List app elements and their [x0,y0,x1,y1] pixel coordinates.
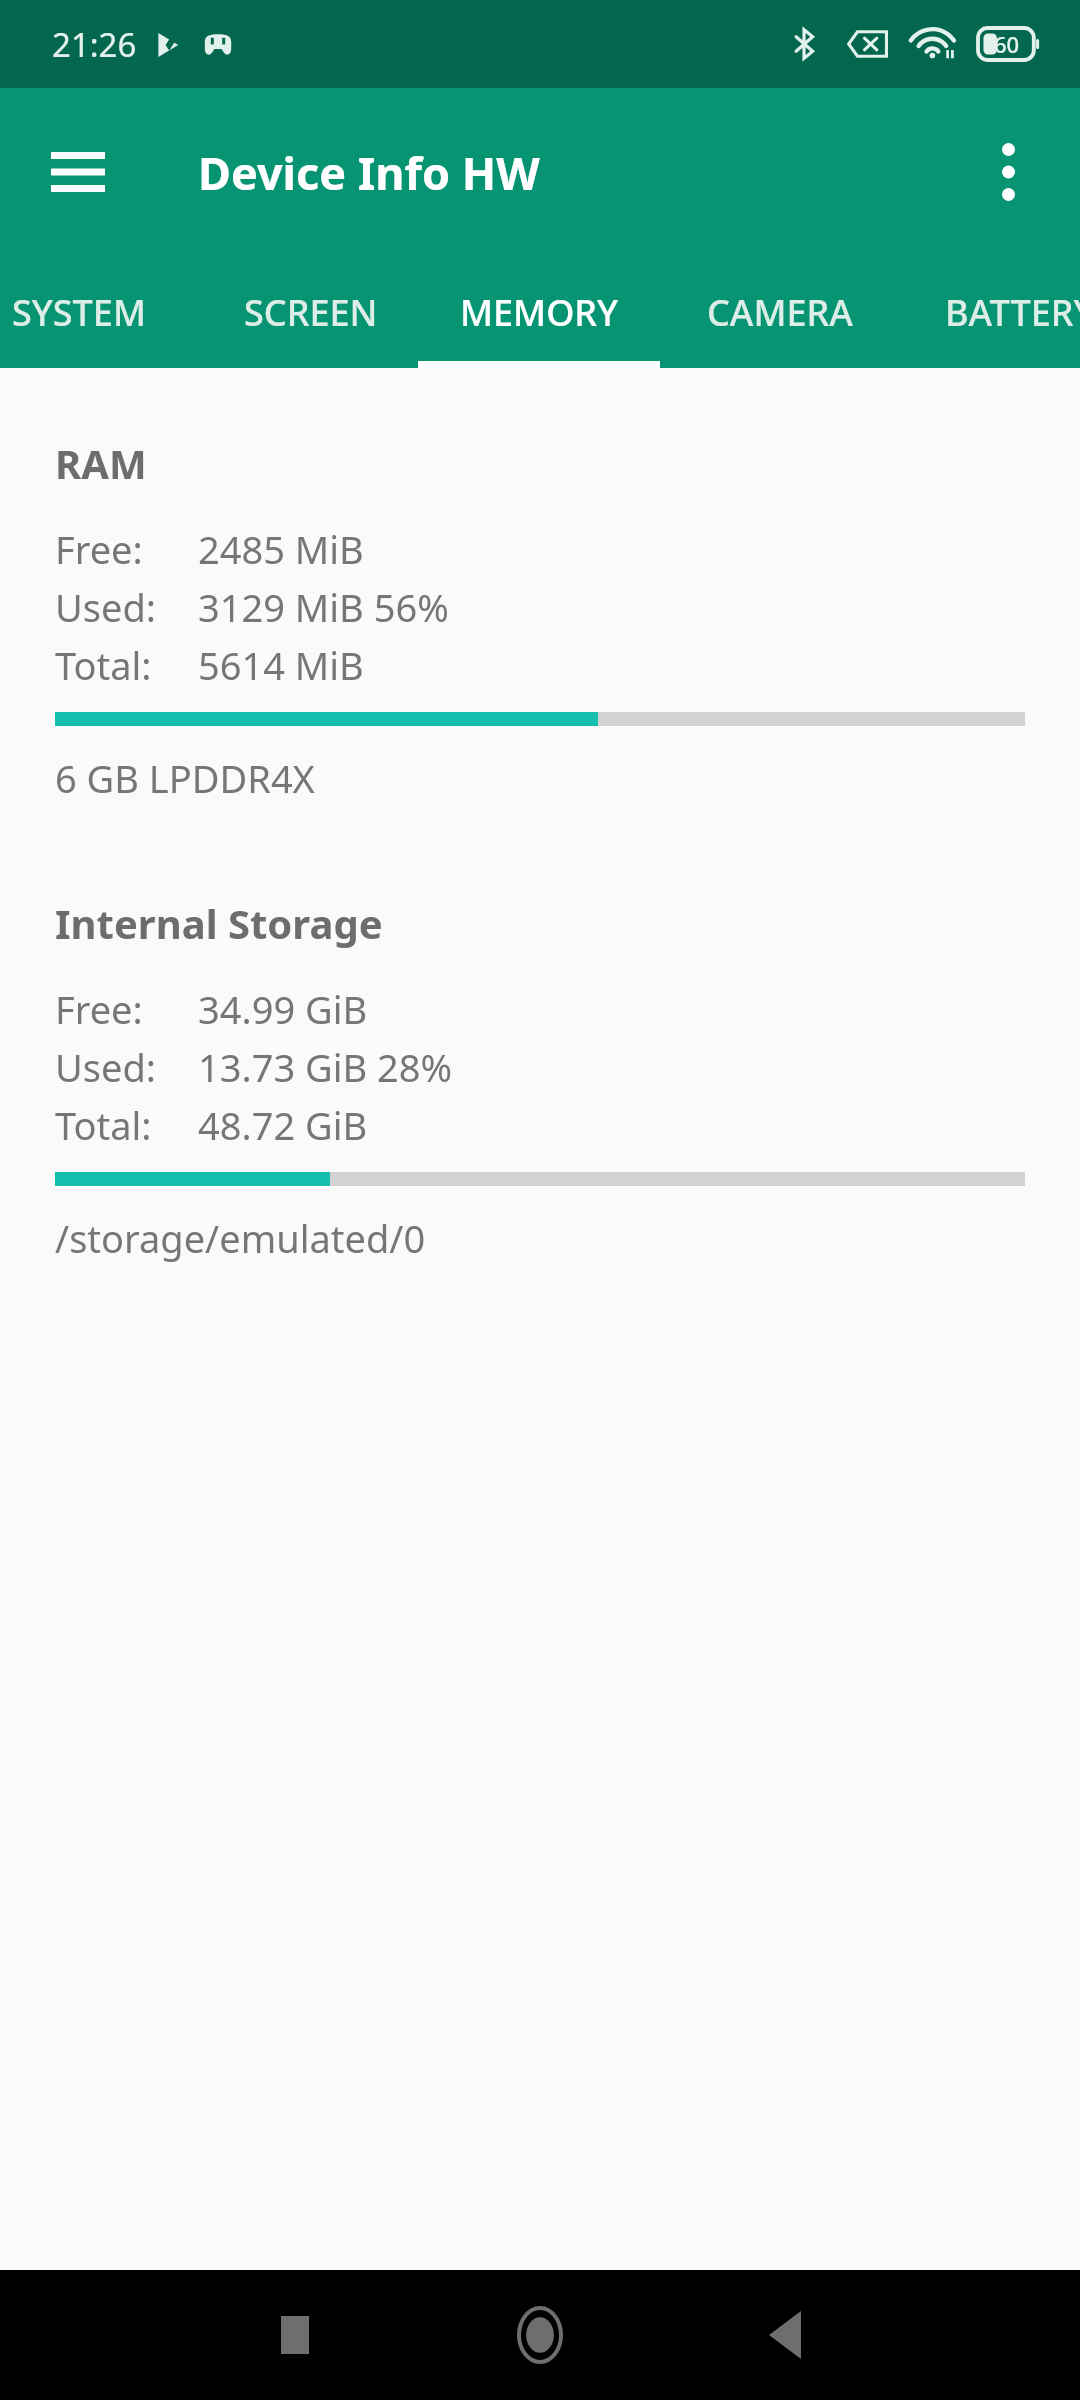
button[interactable]: SYSTEM [0,256,204,368]
staticText: Total: [55,639,152,691]
staticText: 21:26 [52,22,137,67]
staticText: 5614 MiB [198,639,364,691]
staticText: MEMORY [460,288,619,337]
staticText: Internal Storage [55,896,383,950]
staticText: 2485 MiB [198,523,364,575]
button[interactable]: Open navigation drawer [23,117,133,227]
button[interactable]: SCREEN [204,256,418,368]
staticText: 60 [994,29,1020,59]
button[interactable]: Home [485,2280,595,2390]
staticText: Used: [55,581,156,633]
staticText: CAMERA [707,288,853,337]
staticText: SYSTEM [12,288,146,337]
button[interactable]: BATTERY [900,256,1080,368]
staticText: SCREEN [244,288,378,337]
button[interactable]: More options [956,120,1060,224]
staticText: RAM [55,436,147,490]
staticText: 48.72 GiB [198,1099,368,1151]
staticText: 3129 MiB 56% [198,581,449,633]
staticText: 13.73 GiB 28% [198,1041,453,1093]
staticText: BATTERY [945,288,1080,337]
button[interactable]: Recent apps [240,2280,350,2390]
staticText: Free: [55,523,143,575]
staticText: Device Info HW [198,142,540,203]
staticText: Used: [55,1041,156,1093]
staticText: /storage/emulated/0 [55,1212,426,1264]
staticText: Free: [55,983,143,1035]
staticText: Total: [55,1099,152,1151]
button[interactable]: CAMERA [660,256,900,368]
button[interactable]: MEMORY [418,256,660,368]
staticText: 6 GB LPDDR4X [55,752,315,804]
staticText: 34.99 GiB [198,983,368,1035]
button[interactable]: Back [730,2280,840,2390]
